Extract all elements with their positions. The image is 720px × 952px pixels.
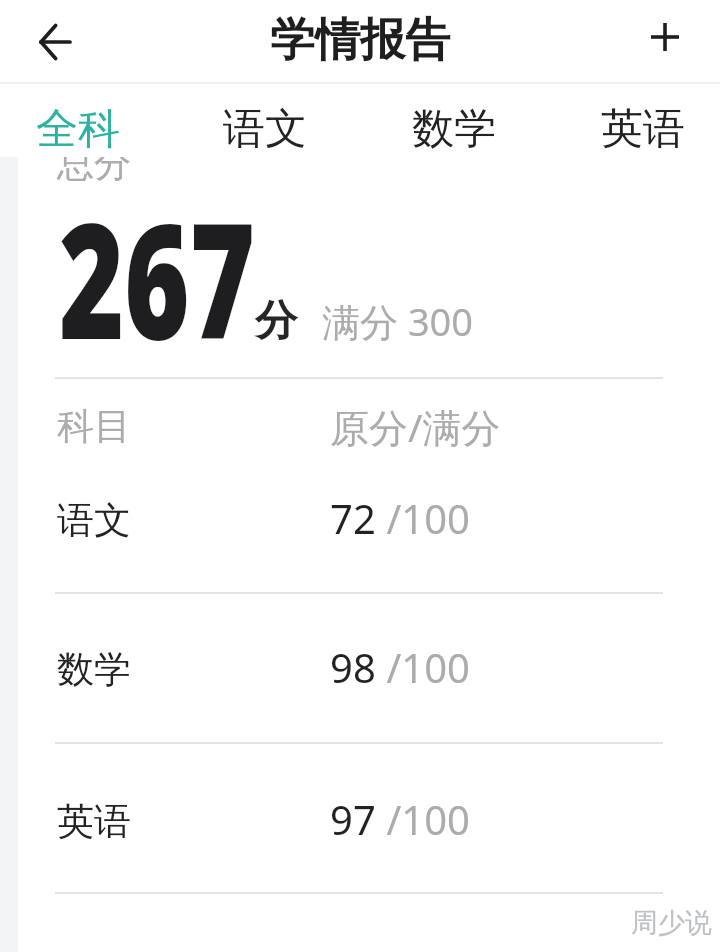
staticText: 72 <box>330 491 376 545</box>
staticText: 全科 <box>36 103 120 156</box>
button[interactable]: 语文 <box>18 442 720 592</box>
staticText: 科目 <box>57 403 131 450</box>
staticText: 学情报告 <box>270 12 450 69</box>
staticText: 97 <box>330 792 376 846</box>
staticText: 98 <box>330 640 376 694</box>
button[interactable]: Back <box>29 16 81 68</box>
staticText: 语文 <box>57 497 131 544</box>
button[interactable]: 语文 <box>175 84 355 157</box>
staticText: /100 <box>376 491 470 545</box>
staticText: /100 <box>376 792 470 846</box>
staticText: 语文 <box>223 103 307 156</box>
button[interactable]: 英语 <box>553 84 720 157</box>
staticText: 英语 <box>57 798 131 845</box>
button[interactable]: 数学 <box>364 84 544 157</box>
staticText: 数学 <box>412 103 496 156</box>
staticText: 满分 300 <box>322 295 474 347</box>
staticText: /100 <box>376 640 470 694</box>
staticText: 周少说 <box>631 906 712 940</box>
staticText: 总分 <box>57 140 131 187</box>
button[interactable]: 数学 <box>18 594 720 744</box>
staticText: 英语 <box>601 103 685 156</box>
staticText: 267 <box>59 168 256 386</box>
button[interactable]: Add report <box>642 14 688 60</box>
staticText: 数学 <box>57 646 131 693</box>
staticText: 原分/满分 <box>330 400 501 453</box>
staticText: 分 <box>255 295 297 348</box>
button[interactable]: 全科 <box>0 84 168 157</box>
button[interactable]: 英语 <box>18 744 720 894</box>
